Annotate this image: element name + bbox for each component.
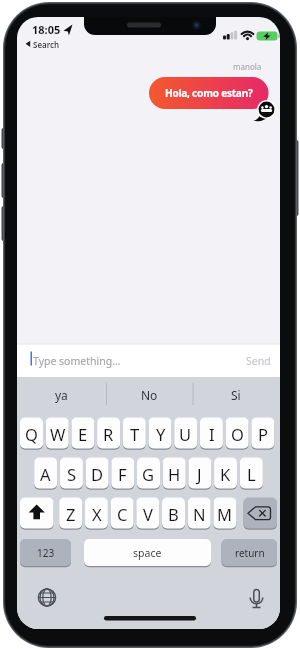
button[interactable] [244, 498, 278, 529]
button[interactable]: U [174, 418, 197, 449]
button[interactable] [20, 498, 54, 529]
staticText: Search [33, 39, 60, 50]
staticText: Z [66, 503, 76, 525]
staticText: Y [156, 423, 166, 445]
staticText: E [78, 423, 88, 445]
staticText: K [220, 463, 231, 485]
button[interactable]: K [214, 458, 237, 489]
staticText: S [67, 463, 77, 485]
staticText: P [258, 423, 268, 445]
button[interactable]: I [200, 418, 223, 449]
staticText: ya [55, 387, 68, 403]
staticText: 18:05 [32, 22, 61, 36]
staticText: F [118, 463, 127, 485]
button[interactable]: Send [238, 345, 278, 376]
button[interactable]: F [111, 458, 134, 489]
staticText: 123 [37, 546, 55, 560]
button[interactable]: Si [192, 378, 280, 412]
staticText: I [209, 423, 215, 445]
staticText: B [168, 503, 179, 525]
button[interactable]: L [240, 458, 263, 489]
staticText: J [197, 463, 202, 485]
button[interactable]: R [97, 418, 120, 449]
button[interactable]: G [137, 458, 160, 489]
staticText: space [133, 546, 162, 560]
staticText: N [193, 503, 206, 525]
button[interactable]: E [71, 418, 94, 449]
staticText: R [103, 423, 114, 445]
staticText: D [91, 463, 104, 485]
button[interactable]: Hola, como estan? [149, 77, 268, 109]
button[interactable]: No [106, 378, 192, 412]
button[interactable]: C [111, 498, 134, 529]
button[interactable]: D [86, 458, 109, 489]
button[interactable]: J [188, 458, 211, 489]
button[interactable]: return [222, 539, 278, 566]
button[interactable]: B [162, 498, 185, 529]
button[interactable]: space [84, 539, 211, 566]
button[interactable]: S [60, 458, 83, 489]
button[interactable]: O [226, 418, 249, 449]
staticText: H [168, 463, 181, 485]
staticText: M [217, 503, 232, 525]
button[interactable]: P [251, 418, 274, 449]
button[interactable]: Z [59, 498, 82, 529]
staticText: A [40, 463, 51, 485]
button[interactable]: H [163, 458, 186, 489]
staticText: U [179, 423, 192, 445]
button[interactable]: Search [33, 39, 65, 50]
button[interactable]: T [123, 418, 146, 449]
button[interactable]: M [213, 498, 236, 529]
staticText: O [231, 423, 244, 445]
button[interactable] [245, 586, 267, 608]
button[interactable]: Type something... [33, 345, 213, 376]
button[interactable]: Y [149, 418, 172, 449]
staticText: return [235, 546, 265, 560]
staticText: Hola, como estan? [165, 86, 253, 100]
staticText: C [117, 503, 128, 525]
staticText: W [50, 423, 66, 445]
staticText: G [142, 463, 155, 485]
button[interactable]: N [188, 498, 211, 529]
staticText: Q [25, 423, 38, 445]
staticText: T [130, 423, 140, 445]
button[interactable]: V [136, 498, 159, 529]
staticText: Type something... [33, 354, 121, 368]
staticText: Si [231, 387, 241, 403]
staticText: L [247, 463, 256, 485]
staticText: V [143, 503, 153, 525]
staticText: X [92, 503, 102, 525]
staticText: manola [233, 61, 262, 71]
button[interactable]: 123 [20, 539, 71, 566]
staticText: Send [246, 354, 271, 368]
staticText: No [141, 387, 158, 403]
button[interactable]: X [85, 498, 108, 529]
button[interactable]: W [46, 418, 69, 449]
button[interactable]: Q [20, 418, 43, 449]
button[interactable] [36, 586, 58, 608]
button[interactable]: ya [17, 378, 106, 412]
button[interactable]: A [34, 458, 57, 489]
